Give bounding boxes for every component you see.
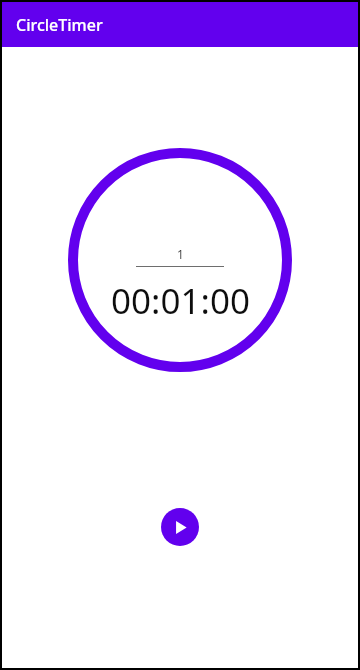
staticText: 00:01:00 <box>111 277 250 325</box>
button[interactable]: Start timer <box>161 508 199 546</box>
button[interactable]: 1 <box>136 246 224 267</box>
staticText: 1 <box>177 246 184 262</box>
staticText: CircleTimer <box>16 14 103 36</box>
